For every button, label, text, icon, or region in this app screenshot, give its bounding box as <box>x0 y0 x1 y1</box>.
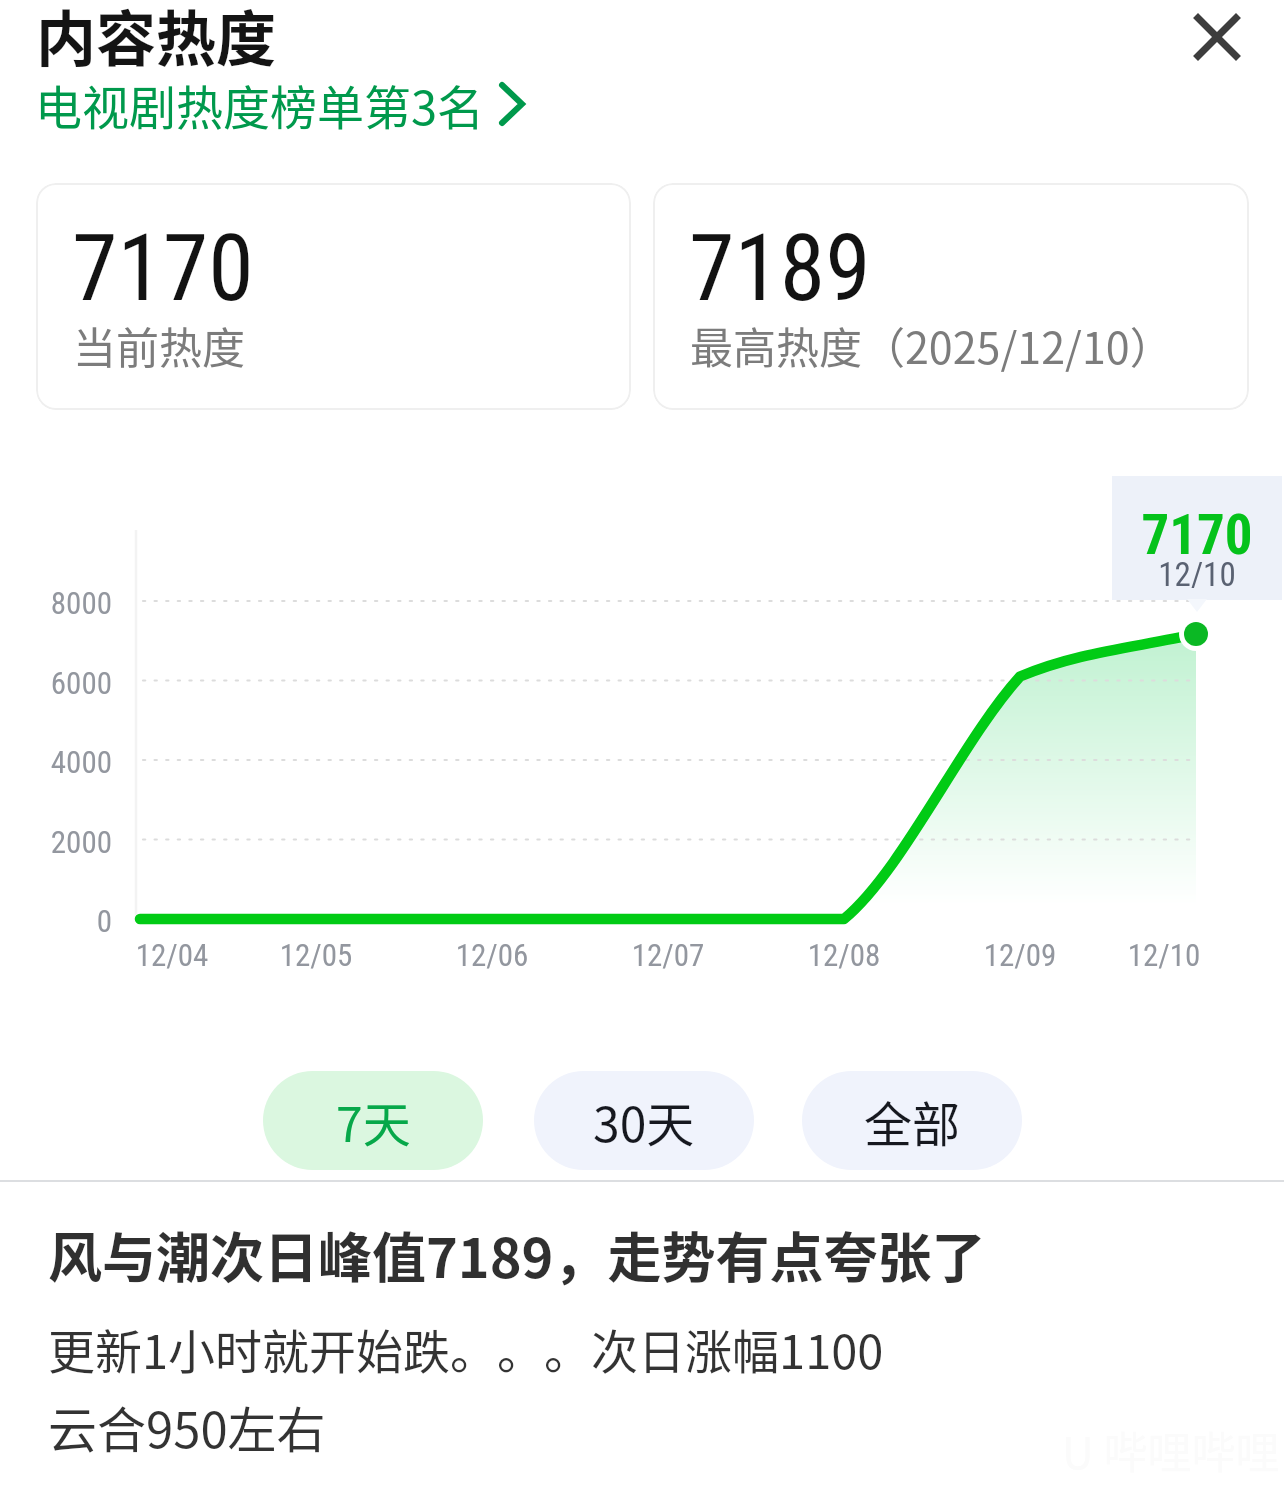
staticText: 2000 <box>0 824 112 860</box>
staticText: 4000 <box>0 744 112 780</box>
button[interactable]: 30天 <box>534 1071 754 1170</box>
staticText: 12/05 <box>250 937 382 973</box>
button[interactable]: Close <box>1171 0 1263 83</box>
button[interactable]: 7170 <box>36 183 631 410</box>
staticText: 7170 <box>72 215 254 323</box>
staticText: 7189 <box>689 215 871 323</box>
staticText: 12/08 <box>778 937 910 973</box>
staticText: 7170 <box>1112 503 1282 567</box>
staticText: 内容热度 <box>36 0 276 78</box>
staticText: 6000 <box>0 665 112 701</box>
staticText: 12/06 <box>426 937 558 973</box>
staticText: 风与潮次日峰值7189，走势有点夸张了 <box>48 1215 986 1293</box>
staticText: 当前热度 <box>73 314 245 376</box>
staticText: 电视剧热度榜单第3名 <box>35 70 485 138</box>
staticText: 全部 <box>864 1086 961 1156</box>
staticText: 12/09 <box>954 937 1086 973</box>
button[interactable]: 7189 <box>653 183 1249 410</box>
staticText: 0 <box>0 903 112 939</box>
button[interactable]: 电视剧热度榜单第3名 <box>33 68 527 140</box>
staticText: 最高热度（2025/12/10） <box>690 314 1173 376</box>
staticText: 12/10 <box>1098 937 1230 973</box>
button[interactable]: 7天 <box>263 1071 483 1170</box>
button[interactable]: 全部 <box>802 1071 1022 1170</box>
staticText: 更新1小时就开始跌。。。次日涨幅1100 <box>48 1314 884 1382</box>
staticText: 8000 <box>0 585 112 621</box>
staticText: 12/04 <box>106 937 238 973</box>
staticText: 云合950左右 <box>48 1391 326 1462</box>
staticText: 12/07 <box>602 937 734 973</box>
staticText: 7天 <box>336 1086 411 1156</box>
staticText: 30天 <box>593 1086 695 1156</box>
staticText: 12/10 <box>1112 555 1282 594</box>
